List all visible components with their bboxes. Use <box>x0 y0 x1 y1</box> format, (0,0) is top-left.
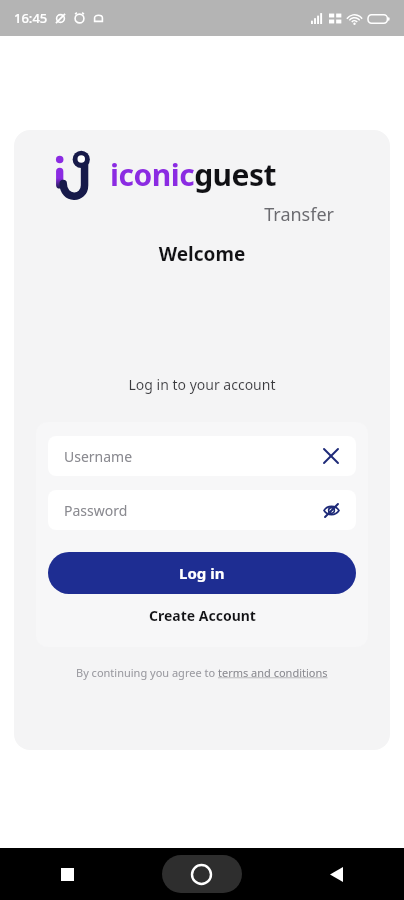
staticText: Transfer <box>14 202 334 227</box>
button[interactable]: Home <box>134 848 269 900</box>
staticText: Password <box>64 501 320 520</box>
staticText: Username <box>64 447 320 466</box>
button[interactable]: Recents <box>0 848 134 900</box>
staticText: Log in to your account <box>14 375 390 394</box>
staticText: Log in <box>179 563 225 583</box>
button[interactable]: Create Account <box>48 606 356 625</box>
button[interactable]: Log in <box>48 552 356 594</box>
staticText: iconicguest <box>110 154 277 195</box>
button[interactable]: Show password <box>320 499 342 521</box>
button[interactable]: By continuing you agree to terms and con… <box>76 665 328 680</box>
staticText: Welcome <box>14 241 390 267</box>
button[interactable]: Clear username <box>320 445 342 467</box>
staticText: Create Account <box>149 606 256 625</box>
button[interactable]: Username <box>48 436 356 476</box>
button[interactable]: Back <box>269 848 404 900</box>
button[interactable]: Password <box>48 490 356 530</box>
staticText: 16:45 <box>14 9 48 27</box>
